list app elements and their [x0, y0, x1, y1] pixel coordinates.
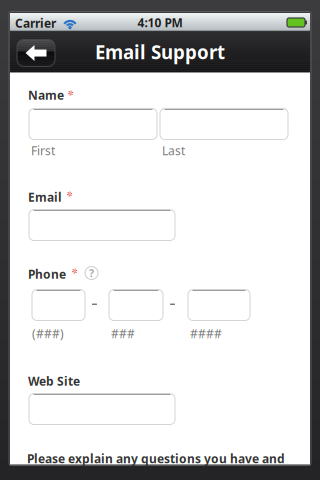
staticText: Email Support: [95, 40, 225, 64]
staticText: ###: [111, 325, 135, 341]
staticText: ?: [89, 266, 94, 280]
staticText: (###): [32, 325, 64, 341]
staticText: 4:10 PM: [137, 14, 182, 30]
staticText: Please explain any questions you have an…: [27, 450, 285, 466]
staticText: Name: [28, 87, 64, 103]
staticText: ####: [190, 325, 222, 341]
staticText: Phone: [28, 266, 66, 282]
button[interactable]: Phone help: [85, 266, 98, 279]
staticText: Last: [162, 142, 185, 158]
button[interactable]: Back: [17, 39, 55, 66]
staticText: Web Site: [28, 373, 80, 389]
staticText: Email: [28, 189, 62, 205]
staticText: Carrier: [15, 15, 56, 31]
staticText: First: [31, 142, 55, 158]
